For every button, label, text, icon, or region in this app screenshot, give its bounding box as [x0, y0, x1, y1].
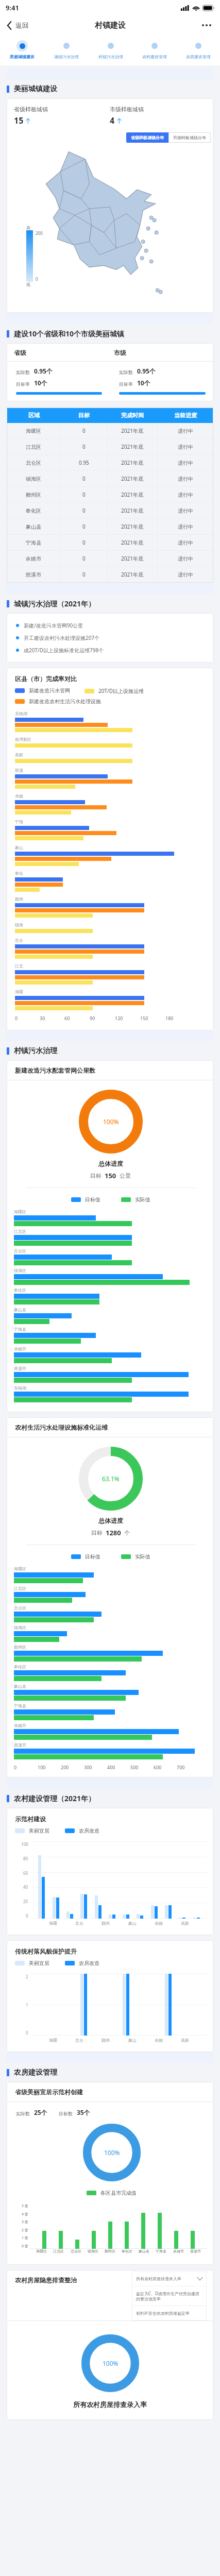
button[interactable]: 更多	[199, 22, 214, 29]
staticText: 700	[177, 1764, 185, 1770]
staticText: 4	[110, 115, 115, 126]
staticText: 省级样板城镇	[14, 106, 48, 113]
staticText: 目标率	[119, 381, 133, 387]
staticText: 镇海区	[14, 1268, 26, 1273]
staticText: 鉴定为C、D级用作生产经营自建房的整治改造率	[136, 2291, 202, 2301]
staticText: 江北	[15, 963, 23, 969]
staticText: 目标	[78, 412, 90, 419]
staticText: 0 套	[22, 2244, 28, 2249]
staticText: 100	[21, 1841, 28, 1847]
staticText: 各区县市完成值	[100, 2190, 137, 2196]
staticText: 东钱湖	[15, 711, 27, 716]
staticText: 镇海区	[88, 2249, 98, 2253]
staticText: 2 套	[22, 2228, 28, 2233]
staticText: 建设10个省级和10个市级美丽城镇	[14, 329, 125, 338]
staticText: 北仑	[75, 1921, 83, 1926]
staticText: 0	[36, 276, 38, 282]
staticText: 海曙	[49, 2038, 57, 2043]
button[interactable]: 农房建设管理	[176, 39, 220, 60]
staticText: 江北区	[14, 1229, 26, 1234]
button[interactable]: 村镇污水治理	[89, 39, 132, 60]
staticText: 海曙区	[14, 1566, 26, 1571]
staticText: 海曙	[49, 1921, 57, 1926]
staticText: 宁海	[15, 819, 23, 824]
button[interactable]: 初判不安全的农村房屋鉴定率	[132, 2306, 207, 2320]
staticText: 宁海县	[156, 2249, 166, 2253]
button[interactable]: 市级样板城镇分布	[168, 132, 211, 143]
staticText: 公里	[120, 1172, 131, 1179]
staticText: 0	[15, 1015, 18, 1021]
staticText: 余姚市	[14, 1723, 26, 1728]
staticText: 鄞州区	[14, 1645, 26, 1650]
staticText: 市级样板城镇	[110, 106, 144, 113]
staticText: 新建改造污水配套管网公里数	[15, 1066, 95, 1074]
staticText: 海曙区	[26, 428, 41, 434]
staticText: 村镇污水治理	[14, 1046, 57, 1056]
staticText: 高新	[181, 1921, 189, 1926]
staticText: 北仑区	[14, 1605, 26, 1611]
staticText: 奉化区	[14, 1664, 26, 1669]
staticText: 总体进度	[98, 1517, 123, 1524]
staticText: 鄞州	[101, 1921, 110, 1926]
staticText: 总体进度	[98, 1160, 123, 1167]
staticText: 低	[26, 282, 30, 287]
staticText: 150	[105, 1171, 116, 1180]
staticText: 实际数	[16, 369, 30, 375]
staticText: 宁海县	[14, 1327, 26, 1332]
staticText: 市级	[114, 349, 126, 357]
button[interactable]: 省级样板城镇分布	[126, 132, 168, 143]
staticText: 城镇污水治理（2021年）	[14, 599, 96, 608]
staticText: 美丽宜居	[29, 1827, 49, 1834]
staticText: 市级样板城镇分布	[173, 135, 206, 140]
staticText: 0.95个	[34, 367, 53, 375]
button[interactable]: 城镇污水治理	[44, 39, 89, 60]
staticText: 进行中	[178, 476, 193, 482]
staticText: 1280	[106, 1528, 121, 1537]
staticText: 慈溪市	[190, 2249, 201, 2253]
staticText: 北仑	[15, 938, 23, 943]
staticText: 100%	[104, 2148, 120, 2157]
staticText: 余姚	[155, 1921, 163, 1926]
staticText: 成20T/D以上设施标准化运维798个	[24, 647, 104, 654]
staticText: 100	[38, 1764, 46, 1770]
staticText: 2021年底	[121, 523, 143, 530]
staticText: 5 套	[22, 2204, 28, 2209]
staticText: 海曙区	[14, 1209, 26, 1214]
staticText: 鄞州区	[26, 492, 41, 498]
staticText: 村镇建设	[95, 21, 126, 30]
button[interactable]: 美丽城镇建设	[0, 39, 44, 60]
staticText: 80	[23, 1856, 28, 1861]
staticText: 0	[82, 523, 86, 530]
staticText: 省级美丽宜居示范村创建	[15, 2088, 83, 2096]
staticText: 新建/改造污水管网90公里	[24, 622, 83, 629]
staticText: 村镇污水治理	[98, 54, 123, 59]
staticText: 慈溪	[15, 768, 23, 773]
staticText: 初判不安全的农村房屋鉴定率	[136, 2311, 190, 2316]
staticText: 35个	[77, 2108, 90, 2116]
staticText: 150	[140, 1015, 148, 1021]
staticText: 600	[154, 1764, 162, 1770]
staticText: 90	[90, 1015, 95, 1021]
button[interactable]: 所有农村房屋排查录入率	[132, 2272, 207, 2286]
staticText: 0	[82, 555, 86, 562]
staticText: 余姚市	[173, 2249, 184, 2253]
staticText: 500	[130, 1764, 139, 1770]
button[interactable]: 农村建设管理	[132, 39, 176, 60]
button[interactable]: 鉴定为C、D级用作生产经营自建房的整治改造率	[132, 2286, 207, 2306]
staticText: 新建改造污水管网	[29, 687, 70, 694]
staticText: 进行中	[178, 444, 193, 450]
staticText: 20	[23, 1899, 28, 1904]
staticText: 200	[36, 230, 43, 236]
staticText: 进行中	[178, 460, 193, 466]
button[interactable]: 返回	[5, 19, 31, 31]
staticText: 鄞州区	[105, 2249, 115, 2253]
staticText: 0	[82, 443, 86, 450]
staticText: 2021年底	[121, 571, 143, 578]
staticText: 25个	[34, 2108, 47, 2116]
staticText: 象山县	[14, 1684, 26, 1689]
staticText: 300	[84, 1764, 92, 1770]
staticText: 区县（市）完成率对比	[15, 675, 77, 683]
staticText: 0	[14, 1764, 17, 1770]
staticText: 所有农村房屋排查录入率	[73, 2400, 147, 2409]
staticText: 10个	[34, 379, 47, 387]
